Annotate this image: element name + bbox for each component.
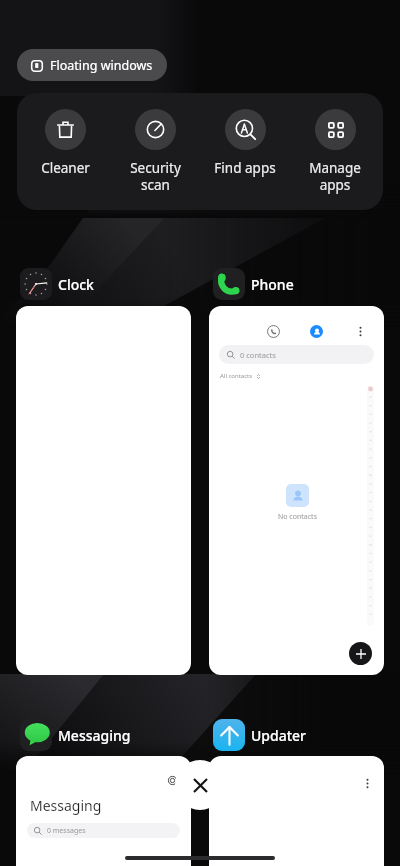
staticText: 0 contacts [240,350,276,360]
button[interactable]: Updater [213,719,307,751]
button[interactable]: Floating windows [17,49,167,81]
staticText: All contacts [220,372,253,380]
staticText: Messaging [58,726,131,745]
button[interactable]: Messaging [20,719,131,751]
button[interactable]: Clock [20,268,94,300]
button[interactable]: Phone [213,268,294,300]
button[interactable] [16,306,191,675]
staticText: Floating windows [50,57,153,74]
staticText: Manage apps [309,159,361,194]
button[interactable] [209,756,384,866]
button[interactable]: 0 contacts [209,306,384,675]
button[interactable]: Close all [175,760,225,810]
button[interactable]: Manage apps [293,93,377,210]
button[interactable]: Messaging [16,756,191,866]
staticText: No contacts [278,512,317,522]
staticText: Phone [251,275,294,294]
staticText: Messaging [30,796,102,815]
button[interactable]: Add contact [349,642,372,665]
staticText: Find apps [214,159,276,177]
staticText: 0 messages [47,826,86,836]
staticText: Updater [251,726,307,745]
button[interactable]: Find apps [203,93,287,210]
staticText: Cleaner [41,159,90,177]
staticText: Security scan [130,159,181,194]
staticText: Clock [58,275,94,294]
button[interactable]: Cleaner [23,93,107,210]
button[interactable]: Security scan [113,93,197,210]
